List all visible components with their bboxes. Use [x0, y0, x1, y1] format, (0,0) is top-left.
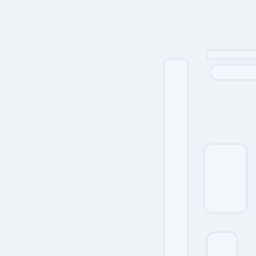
button[interactable]: Card [204, 144, 247, 213]
button[interactable]: Search [210, 64, 256, 80]
button[interactable]: Card [207, 232, 237, 256]
